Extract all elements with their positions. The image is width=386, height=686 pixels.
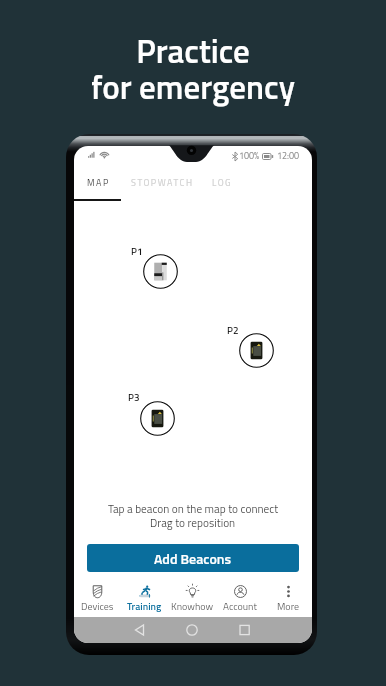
staticText: P2 (227, 323, 239, 338)
button[interactable]: Add Beacons (87, 544, 299, 572)
staticText: More (277, 599, 300, 614)
staticText: Devices (81, 599, 114, 614)
staticText: P3 (128, 390, 140, 405)
button[interactable]: Knowhow (168, 576, 216, 614)
button[interactable]: LOG (212, 176, 233, 190)
staticText: Account (223, 599, 257, 614)
staticText: Tap a beacon on the map to connect (108, 500, 279, 517)
button[interactable]: Beacon P2 (239, 333, 274, 368)
staticText: Drag to reposition (150, 514, 236, 531)
button[interactable]: STOPWATCH (131, 176, 194, 190)
staticText: STOPWATCH (131, 176, 194, 190)
staticText: Knowhow (171, 599, 214, 614)
staticText: MAP (87, 176, 110, 190)
staticText: 100% (239, 149, 260, 163)
button[interactable]: Beacon P3 (140, 401, 175, 436)
staticText: P1 (131, 244, 143, 259)
staticText: Add Beacons (154, 548, 232, 569)
staticText: Practice (136, 26, 250, 76)
button[interactable]: Training (121, 576, 168, 614)
button[interactable]: More (264, 576, 312, 614)
staticText: for emergency (91, 62, 295, 112)
button[interactable]: Beacon P1 (143, 254, 178, 289)
button[interactable]: Account (216, 576, 264, 614)
button[interactable]: Devices (74, 576, 121, 614)
staticText: Training (127, 599, 162, 614)
staticText: 12:00 (277, 149, 300, 163)
staticText: LOG (212, 176, 233, 190)
button[interactable]: MAP (87, 176, 110, 190)
